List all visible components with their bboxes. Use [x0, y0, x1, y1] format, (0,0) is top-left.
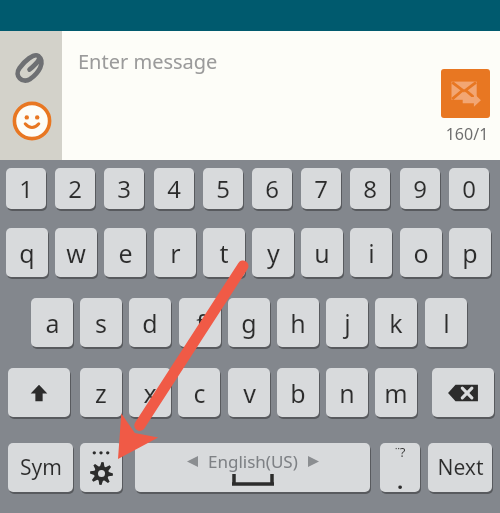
button[interactable]: m — [375, 368, 417, 417]
button[interactable]: t — [203, 228, 245, 277]
staticText: n — [339, 376, 355, 410]
staticText: l — [443, 306, 450, 340]
button[interactable]: 9 — [400, 168, 440, 209]
staticText: Next — [437, 453, 484, 482]
staticText: 0 — [462, 172, 476, 205]
staticText: r — [170, 236, 181, 270]
button[interactable]: e — [104, 228, 146, 277]
staticText: 3 — [117, 172, 131, 205]
button[interactable]: 6 — [252, 168, 292, 209]
staticText: Sym — [20, 453, 62, 482]
button[interactable]: q — [6, 228, 48, 277]
staticText: g — [241, 306, 257, 340]
staticText: c — [193, 376, 206, 410]
staticText: a — [45, 306, 60, 340]
staticText: t — [219, 236, 229, 270]
staticText: f — [196, 306, 205, 340]
staticText: d — [142, 306, 158, 340]
button[interactable]: Delete — [432, 368, 494, 417]
button[interactable]: 4 — [154, 168, 194, 209]
button[interactable]: Send — [441, 69, 490, 118]
button[interactable]: d — [129, 298, 171, 347]
button[interactable]: a — [31, 298, 73, 347]
button[interactable]: English(US) — [135, 443, 370, 492]
button[interactable]: 8 — [350, 168, 390, 209]
button[interactable]: o — [400, 228, 442, 277]
button[interactable]: 0 — [449, 168, 489, 209]
button[interactable]: b — [277, 368, 319, 417]
staticText: s — [95, 306, 107, 340]
staticText: 2 — [68, 172, 82, 205]
button[interactable]: Emoji — [12, 101, 52, 141]
button[interactable]: u — [301, 228, 343, 277]
staticText: 7 — [314, 172, 328, 205]
staticText: English(US) — [208, 450, 298, 473]
button[interactable]: Sym — [8, 443, 73, 492]
staticText: j — [344, 306, 351, 340]
button[interactable]: Period — [380, 443, 420, 492]
button[interactable]: y — [252, 228, 294, 277]
staticText: e — [118, 236, 133, 270]
button[interactable]: i — [350, 228, 392, 277]
button[interactable]: s — [80, 298, 122, 347]
staticText: 4 — [167, 172, 181, 205]
staticText: x — [143, 376, 157, 410]
staticText: i — [368, 236, 375, 270]
staticText: 1 — [19, 172, 33, 205]
staticText: q — [19, 236, 35, 270]
button[interactable]: 3 — [104, 168, 144, 209]
staticText: y — [267, 236, 280, 270]
staticText: 160/1 — [441, 123, 493, 145]
staticText: . — [397, 465, 404, 492]
button[interactable]: k — [375, 298, 417, 347]
button[interactable]: g — [228, 298, 270, 347]
staticText: u — [314, 236, 330, 270]
button[interactable]: 7 — [301, 168, 341, 209]
staticText: o — [413, 236, 429, 270]
staticText: h — [290, 306, 306, 340]
staticText: 6 — [265, 172, 279, 205]
staticText: k — [389, 306, 403, 340]
button[interactable]: Next — [428, 443, 492, 492]
button[interactable]: c — [178, 368, 220, 417]
button[interactable]: r — [154, 228, 196, 277]
button[interactable]: 5 — [203, 168, 243, 209]
button[interactable]: 1 — [6, 168, 46, 209]
staticText: m — [384, 376, 408, 410]
staticText: ˙˙? — [395, 443, 406, 461]
button[interactable]: v — [228, 368, 270, 417]
button[interactable]: Attach — [13, 48, 49, 84]
button[interactable]: p — [449, 228, 491, 277]
button[interactable]: j — [326, 298, 368, 347]
button[interactable]: l — [425, 298, 467, 347]
staticText: z — [95, 376, 107, 410]
staticText: b — [290, 376, 306, 410]
staticText: Enter message — [78, 48, 218, 75]
staticText: v — [243, 376, 256, 410]
button[interactable]: Settings — [80, 443, 122, 492]
button[interactable]: Shift — [8, 368, 70, 417]
button[interactable]: z — [80, 368, 122, 417]
staticText: w — [66, 236, 86, 270]
button[interactable]: n — [326, 368, 368, 417]
staticText: 9 — [413, 172, 427, 205]
button[interactable]: w — [55, 228, 97, 277]
staticText: 8 — [363, 172, 377, 205]
button[interactable]: x — [129, 368, 171, 417]
staticText: 5 — [216, 172, 230, 205]
button[interactable]: h — [277, 298, 319, 347]
staticText: p — [462, 236, 478, 270]
button[interactable]: f — [179, 298, 221, 347]
button[interactable]: 2 — [55, 168, 95, 209]
